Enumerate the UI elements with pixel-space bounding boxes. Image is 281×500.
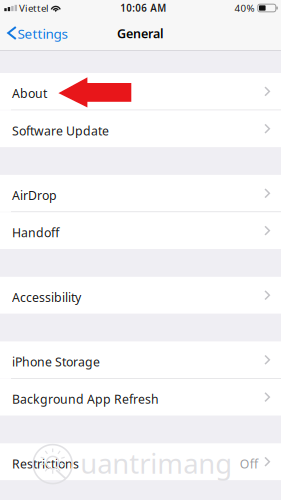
button[interactable]: Accessibility [0,277,281,314]
staticText: Off [240,455,258,472]
button[interactable]: Settings [0,19,73,47]
button[interactable]: Handoff [0,212,281,249]
button[interactable]: iPhone Storage [0,341,281,378]
button[interactable]: AirDrop [0,175,281,212]
staticText: Restrictions [12,455,79,472]
button[interactable]: About [0,73,281,110]
staticText: Settings [17,24,67,43]
staticText: Software Update [12,122,109,139]
button[interactable]: Restrictions [0,443,281,480]
staticText: Accessibility [12,289,81,305]
staticText: Background App Refresh [12,391,159,407]
button[interactable]: Background App Refresh [0,379,281,415]
staticText: AirDrop [12,187,57,204]
staticText: Handoff [12,224,59,241]
staticText: Viettel [19,1,49,15]
button[interactable]: Software Update [0,110,281,147]
staticText: General [117,25,164,42]
staticText: uantrimang [80,444,232,482]
staticText: 40% [234,1,254,15]
staticText: iPhone Storage [12,353,100,370]
staticText: About [12,85,47,102]
staticText: 10:06 AM [120,1,166,15]
